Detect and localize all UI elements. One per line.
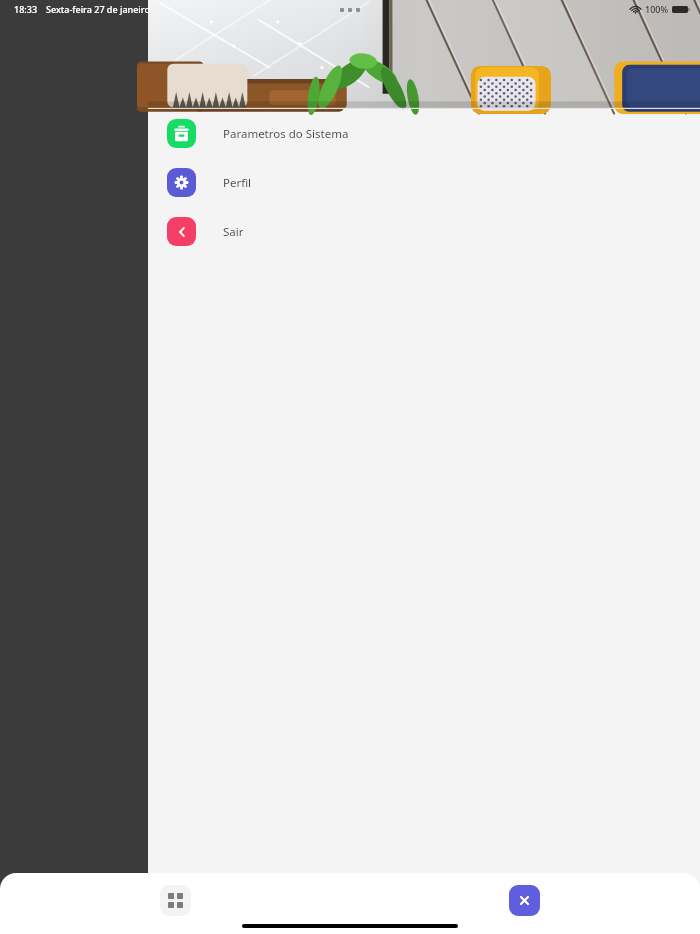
- staticText: 100%: [645, 3, 669, 15]
- staticText: Perfil: [223, 175, 252, 191]
- staticText: Sair: [223, 224, 244, 240]
- button[interactable]: Close: [509, 885, 540, 916]
- staticText: Parametros do Sistema: [223, 126, 349, 142]
- staticText: Sexta-feira 27 de janeiro: [46, 3, 150, 15]
- button[interactable]: Sair: [148, 207, 700, 256]
- button[interactable]: Apps grid: [160, 885, 191, 916]
- button[interactable]: More options: [335, 0, 365, 20]
- staticText: 18:33: [14, 3, 38, 15]
- button[interactable]: Parametros do Sistema: [148, 109, 700, 158]
- button[interactable]: Perfil: [148, 158, 700, 207]
